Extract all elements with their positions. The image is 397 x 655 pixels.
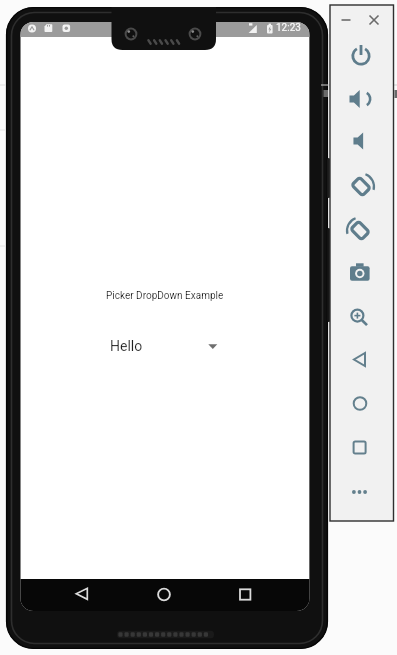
staticText: Picker DropDown Example [106, 290, 224, 302]
button[interactable] [347, 302, 375, 330]
staticText: 12:23 [276, 22, 301, 34]
button[interactable] [347, 172, 375, 200]
button[interactable] [347, 127, 375, 155]
button[interactable] [148, 582, 180, 608]
button[interactable] [347, 389, 375, 417]
button[interactable] [347, 85, 375, 113]
button[interactable] [229, 582, 261, 608]
button[interactable] [108, 336, 220, 354]
button[interactable] [66, 582, 98, 608]
button[interactable] [347, 345, 375, 373]
button[interactable] [347, 42, 375, 70]
button[interactable] [347, 478, 375, 506]
button[interactable] [366, 13, 382, 27]
button[interactable] [347, 259, 375, 287]
button[interactable] [347, 216, 375, 244]
button[interactable] [347, 433, 375, 461]
staticText: Hello [110, 338, 143, 354]
button[interactable] [338, 13, 354, 27]
